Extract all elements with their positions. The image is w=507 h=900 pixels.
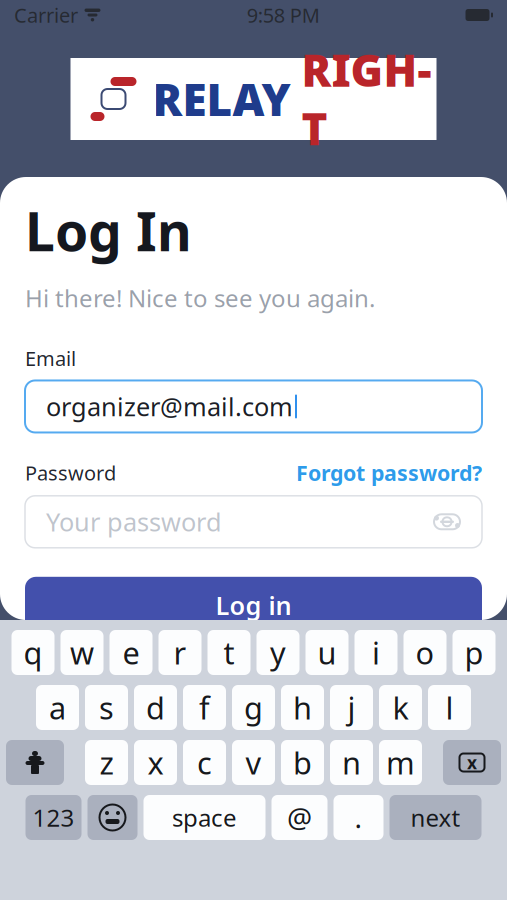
staticText: d <box>146 687 165 728</box>
staticText: RIGHT <box>301 41 431 157</box>
staticText: l <box>445 687 453 728</box>
staticText: w <box>70 632 94 673</box>
staticText: a <box>49 687 66 728</box>
staticText: f <box>199 687 210 728</box>
button[interactable]: Delete <box>443 740 501 785</box>
button[interactable]: x <box>134 740 177 785</box>
staticText: z <box>99 742 113 783</box>
staticText: Forgot password? <box>296 458 482 487</box>
button[interactable]: u <box>305 630 348 675</box>
staticText: u <box>317 632 336 673</box>
button[interactable]: Log in <box>25 577 482 634</box>
button[interactable]: r <box>158 630 201 675</box>
staticText: Log In <box>25 195 192 266</box>
staticText: o <box>415 632 434 673</box>
staticText: s <box>99 687 114 728</box>
button[interactable]: . <box>333 795 383 840</box>
staticText: i <box>372 632 380 673</box>
button[interactable]: g <box>232 685 275 730</box>
staticText: m <box>386 742 415 783</box>
button[interactable]: w <box>60 630 103 675</box>
staticText: g <box>244 687 263 728</box>
staticText: Your password <box>46 505 222 539</box>
staticText: t <box>223 632 234 673</box>
staticText: x <box>467 751 477 774</box>
staticText: c <box>197 742 212 783</box>
staticText: . <box>354 799 362 836</box>
button[interactable]: v <box>232 740 275 785</box>
staticText: p <box>464 632 483 673</box>
staticText: 9:58 PM <box>247 2 320 28</box>
button[interactable]: n <box>330 740 373 785</box>
staticText: @ <box>287 799 312 836</box>
button[interactable]: q <box>11 630 54 675</box>
button[interactable]: Emoji keyboard <box>87 795 137 840</box>
button[interactable]: i <box>354 630 397 675</box>
staticText: Email <box>25 345 76 371</box>
staticText: organizer@mail.com <box>46 390 293 423</box>
button[interactable]: p <box>452 630 495 675</box>
staticText: x <box>147 742 163 783</box>
button[interactable]: next <box>389 795 481 840</box>
button[interactable]: d <box>134 685 177 730</box>
button[interactable]: k <box>379 685 422 730</box>
staticText: 123 <box>32 802 74 833</box>
staticText: h <box>293 687 312 728</box>
staticText: q <box>23 632 42 673</box>
button[interactable]: Forgot password? <box>296 458 482 487</box>
staticText: e <box>122 632 139 673</box>
staticText: v <box>245 742 261 783</box>
staticText: RELAY <box>152 70 290 128</box>
button[interactable]: s <box>85 685 128 730</box>
button[interactable]: Shift <box>6 740 64 785</box>
staticText: next <box>410 802 460 833</box>
button[interactable]: h <box>281 685 324 730</box>
button[interactable]: c <box>183 740 226 785</box>
staticText: Hi there! Nice to see you again. <box>25 282 375 314</box>
button[interactable]: t <box>207 630 250 675</box>
button[interactable]: e <box>109 630 152 675</box>
staticText: Password <box>25 459 116 486</box>
staticText: Carrier <box>14 2 78 28</box>
staticText: space <box>172 802 237 833</box>
button[interactable]: j <box>330 685 373 730</box>
staticText: y <box>270 632 286 673</box>
button[interactable]: 123 <box>25 795 81 840</box>
staticText: Log in <box>215 588 291 622</box>
staticText: r <box>173 632 186 673</box>
button[interactable]: z <box>85 740 128 785</box>
staticText: b <box>293 742 312 783</box>
button[interactable]: a <box>36 685 79 730</box>
staticText: k <box>392 687 408 728</box>
button[interactable]: f <box>183 685 226 730</box>
staticText: j <box>347 687 355 728</box>
button[interactable]: l <box>428 685 471 730</box>
button[interactable]: @ <box>271 795 327 840</box>
button[interactable]: b <box>281 740 324 785</box>
button[interactable]: space <box>143 795 265 840</box>
button[interactable]: m <box>379 740 422 785</box>
button[interactable]: y <box>256 630 299 675</box>
button[interactable]: o <box>403 630 446 675</box>
staticText: n <box>342 742 361 783</box>
